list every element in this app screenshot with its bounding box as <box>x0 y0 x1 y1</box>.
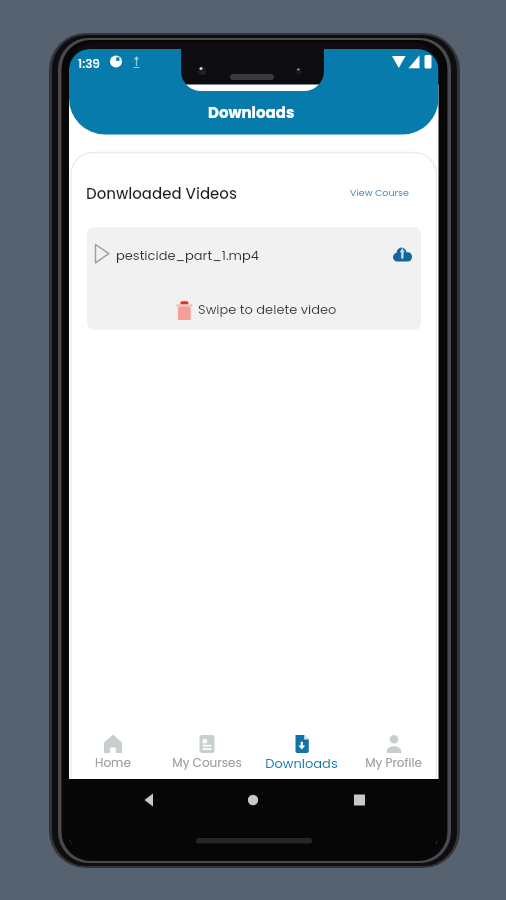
staticText: Home <box>95 754 131 771</box>
button[interactable]: Donwloaded Videos <box>86 183 237 204</box>
staticText: Donwloaded Videos <box>86 183 237 204</box>
staticText: Swipe to delete video <box>198 300 337 318</box>
button[interactable]: Home <box>69 725 157 777</box>
button[interactable]: Downloads <box>257 725 345 777</box>
button[interactable]: My Profile <box>349 725 437 777</box>
button[interactable]: View Course <box>350 186 409 199</box>
staticText: View Course <box>350 186 409 199</box>
staticText: My Profile <box>365 754 422 771</box>
staticText: Downloads <box>208 102 295 123</box>
button[interactable]: pesticide_part_1.mp4 <box>116 246 259 264</box>
staticText: pesticide_part_1.mp4 <box>116 246 259 264</box>
button[interactable]: My Courses <box>163 725 251 777</box>
staticText: My Courses <box>172 754 242 771</box>
staticText: Downloads <box>265 754 338 772</box>
staticText: 1:39 <box>78 55 100 72</box>
